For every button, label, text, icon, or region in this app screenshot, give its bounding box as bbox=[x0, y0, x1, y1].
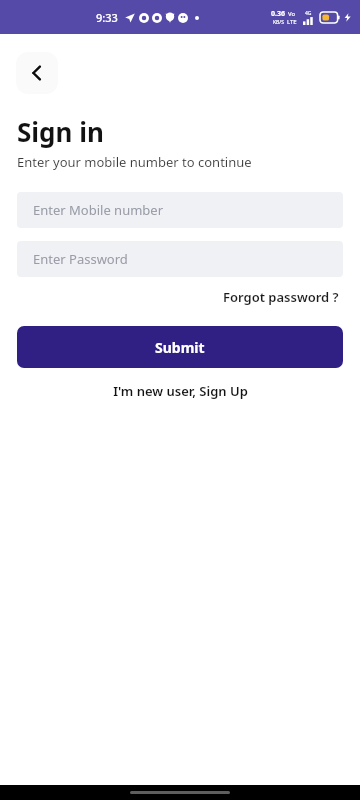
staticText: 0.36 bbox=[271, 9, 285, 19]
staticText: Sign in bbox=[17, 114, 104, 149]
staticText: KB/S bbox=[273, 19, 284, 26]
staticText: Forgot password ? bbox=[223, 288, 339, 306]
staticText: I'm new user, Sign Up bbox=[113, 382, 248, 400]
staticText: LTE bbox=[287, 18, 297, 26]
staticText: Submit bbox=[155, 338, 205, 357]
button[interactable]: I'm new user, Sign Up bbox=[107, 379, 254, 403]
button[interactable]: Submit bbox=[17, 326, 343, 368]
staticText: Enter Mobile number bbox=[33, 201, 164, 219]
button[interactable]: Back bbox=[16, 52, 58, 94]
button[interactable]: Enter Mobile number bbox=[17, 192, 343, 228]
button[interactable]: Forgot password ? bbox=[219, 285, 343, 309]
staticText: Enter Password bbox=[33, 250, 128, 268]
staticText: Enter your mobile number to continue bbox=[17, 153, 252, 171]
staticText: Vo bbox=[288, 10, 296, 18]
staticText: 4G bbox=[305, 10, 312, 17]
staticText: 9:33 bbox=[96, 10, 118, 25]
button[interactable]: Enter Password bbox=[17, 241, 343, 277]
